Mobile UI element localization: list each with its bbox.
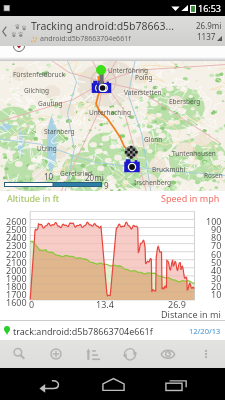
staticText: 26.9mi: [196, 20, 222, 31]
staticText: 70: [211, 239, 222, 251]
staticText: 2300: [6, 239, 27, 251]
staticText: Ebersberg: [169, 97, 201, 106]
staticText: 2400: [6, 231, 27, 243]
staticText: Tracking android:d5b78663...: [31, 19, 175, 33]
staticText: Unterhaching: [89, 108, 131, 117]
staticText: 1700: [6, 288, 27, 300]
staticText: Bruckmühl: [152, 165, 186, 174]
staticText: 1800: [6, 280, 27, 292]
staticText: 90: [211, 223, 222, 235]
staticText: 50: [211, 256, 222, 268]
button[interactable]: Show on map: [149, 340, 187, 368]
staticText: Gilching: [24, 86, 49, 95]
staticText: 1900: [6, 272, 27, 284]
button[interactable]: Back: [28, 368, 72, 400]
staticText: 30: [211, 272, 222, 284]
staticText: track:android:d5b78663704e661f: [13, 325, 189, 337]
staticText: 60: [211, 248, 222, 260]
staticText: Speed in mph: [161, 192, 220, 204]
staticText: Utzing: [37, 144, 57, 153]
staticText: Gauting: [38, 99, 63, 108]
staticText: Vaterstetten: [124, 88, 162, 97]
button[interactable]: Recent apps: [155, 368, 197, 400]
staticText: 20mi: [85, 172, 104, 183]
staticText: 20: [211, 280, 222, 292]
staticText: Starnberg: [44, 127, 75, 136]
button[interactable]: Navigate up: [0, 16, 9, 46]
staticText: Glonn: [144, 135, 163, 144]
button[interactable]: Search: [0, 340, 37, 368]
staticText: 2000: [6, 264, 27, 276]
button[interactable]: Add: [37, 340, 74, 368]
button[interactable]: track:android:d5b78663704e661f: [0, 321, 225, 340]
staticText: Altitude in ft: [7, 192, 59, 204]
button[interactable]: Navigate up: [0, 16, 225, 46]
button[interactable]: Select track: [13, 46, 25, 52]
staticText: Fürstenfeldbruck: [13, 70, 66, 79]
staticText: Unterföhring: [108, 66, 149, 75]
staticText: 2100: [6, 256, 27, 268]
staticText: 1137: [197, 31, 216, 42]
staticText: 10: [211, 288, 222, 300]
staticText: 16:53: [198, 2, 222, 14]
button[interactable]: Sort: [74, 340, 111, 368]
staticText: Distance in mi: [161, 308, 221, 320]
staticText: android:d5b78663704e661f: [40, 34, 131, 44]
staticText: 100: [206, 215, 222, 227]
button[interactable]: Refresh: [111, 340, 149, 368]
staticText: Geretsried: [60, 169, 93, 178]
staticText: Rosen: [204, 171, 223, 180]
staticText: Tuntenhausen: [172, 149, 216, 158]
staticText: Poing: [135, 73, 153, 82]
staticText: 0: [29, 298, 35, 310]
staticText: 1600: [6, 296, 27, 308]
staticText: 2600: [6, 215, 27, 227]
staticText: 2200: [6, 248, 27, 260]
button[interactable]: Home: [92, 368, 134, 400]
staticText: 13.4: [96, 298, 114, 310]
staticText: 2500: [6, 223, 27, 235]
staticText: 9: [104, 180, 109, 191]
staticText: 10: [44, 171, 54, 182]
staticText: Irschenberg: [134, 178, 172, 187]
staticText: 80: [211, 231, 222, 243]
staticText: 12/20/13: [189, 326, 221, 336]
staticText: 26.9: [168, 298, 186, 310]
staticText: 40: [211, 264, 222, 276]
button[interactable]: More options: [187, 340, 225, 368]
